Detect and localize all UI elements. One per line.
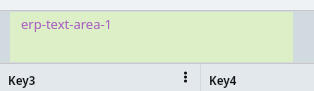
button[interactable]: More options: [173, 64, 197, 91]
staticText: erp-text-area-1: [21, 15, 113, 33]
staticText: Key4: [209, 73, 237, 89]
button[interactable]: Key3: [0, 64, 200, 91]
button[interactable]: erp-text-area-1: [10, 12, 293, 62]
button[interactable]: Key4: [201, 64, 314, 91]
staticText: Key3: [8, 73, 173, 89]
